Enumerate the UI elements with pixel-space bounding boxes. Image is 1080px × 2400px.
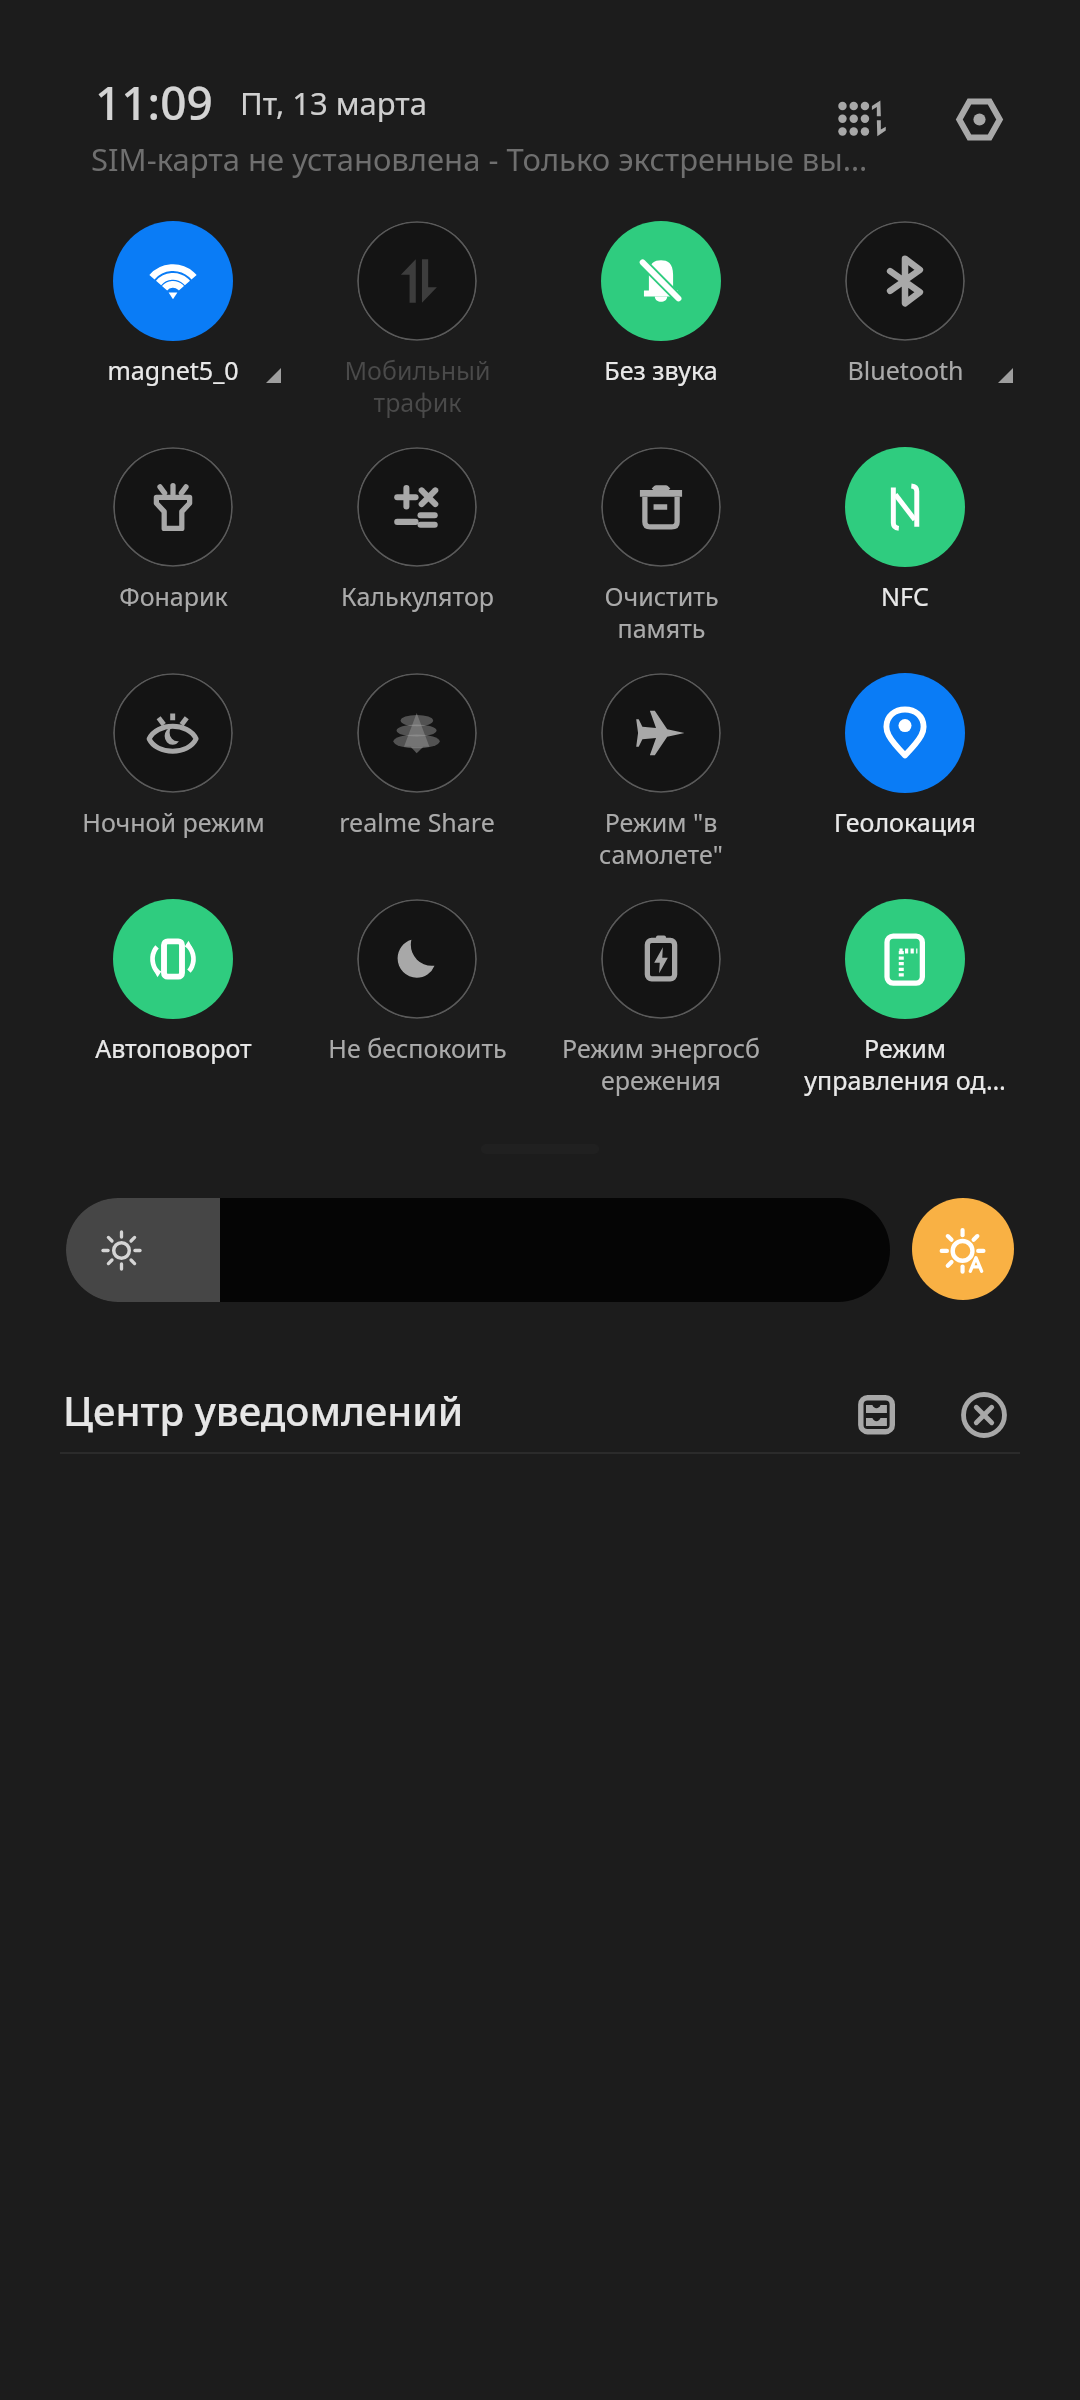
staticText: Очистить память — [604, 579, 719, 645]
button[interactable] — [539, 893, 783, 1091]
button[interactable] — [539, 667, 783, 865]
staticText: 11:09 — [95, 71, 213, 134]
button[interactable]: Brightness — [66, 1198, 890, 1302]
staticText: realme Share — [339, 805, 495, 839]
button[interactable] — [295, 215, 539, 413]
staticText: SIM-карта не установлена - Только экстре… — [91, 138, 868, 180]
staticText: Не беспокоить — [328, 1031, 507, 1065]
button[interactable] — [295, 667, 539, 865]
button[interactable] — [783, 215, 1027, 413]
staticText: Режим "в самолете" — [599, 805, 723, 871]
staticText: Пт, 13 марта — [240, 82, 428, 124]
button[interactable]: Clear all notifications — [946, 1378, 1022, 1454]
staticText: Фонарик — [119, 579, 228, 613]
staticText: Калькулятор — [341, 579, 494, 613]
button[interactable] — [783, 441, 1027, 639]
staticText: Режим энергосб ережения — [562, 1031, 760, 1097]
button[interactable]: Auto brightness — [912, 1198, 1014, 1300]
button[interactable]: Edit tiles — [820, 76, 902, 158]
staticText: Без звука — [604, 353, 718, 387]
button[interactable] — [783, 667, 1027, 865]
button[interactable] — [51, 893, 295, 1091]
button[interactable] — [51, 667, 295, 865]
button[interactable] — [539, 215, 783, 413]
button[interactable] — [783, 893, 1027, 1091]
button[interactable]: Settings — [938, 76, 1020, 158]
staticText: Ночной режим — [82, 805, 265, 839]
button[interactable] — [295, 893, 539, 1091]
button[interactable] — [51, 215, 295, 413]
button[interactable] — [51, 441, 295, 639]
staticText: magnet5_0 — [107, 353, 239, 387]
button[interactable] — [539, 441, 783, 639]
staticText: Мобильный трафик — [344, 353, 491, 419]
staticText: Центр уведомлений — [63, 1383, 464, 1437]
staticText: Bluetooth — [847, 353, 964, 387]
staticText: Геолокация — [834, 805, 976, 839]
staticText: NFC — [881, 579, 929, 613]
staticText: Автоповорот — [95, 1031, 252, 1065]
button[interactable]: Notification settings — [838, 1378, 914, 1454]
staticText: Режим управления од… — [804, 1031, 1006, 1097]
button[interactable] — [295, 441, 539, 639]
